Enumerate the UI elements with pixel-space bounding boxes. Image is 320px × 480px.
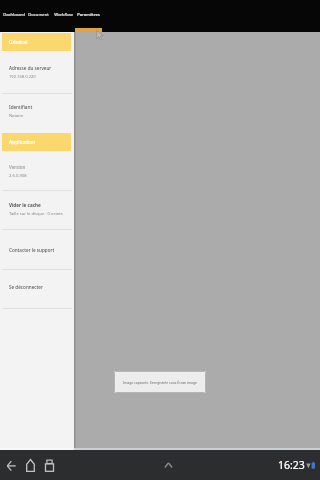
- staticText: 2.6.0-908: [9, 173, 27, 179]
- staticText: Dashboard: [3, 12, 25, 18]
- button[interactable]: Workflow: [52, 0, 75, 32]
- button[interactable]: Identifiant: [0, 94, 74, 133]
- staticText: 16:23: [278, 458, 305, 472]
- staticText: Application: [9, 139, 36, 146]
- staticText: Notaire: [9, 113, 24, 119]
- button[interactable]: Vider le cache: [0, 191, 74, 229]
- staticText: Se déconnecter: [9, 284, 43, 290]
- staticText: Version: [9, 164, 26, 170]
- button[interactable]: Application: [2, 133, 71, 151]
- staticText: Contacter le support: [9, 247, 55, 253]
- staticText: Document: [28, 12, 49, 18]
- button[interactable]: Contacter le support: [0, 230, 74, 269]
- staticText: Identifiant: [9, 104, 33, 110]
- staticText: 192.168.0.220: [9, 74, 36, 80]
- button[interactable]: Général: [2, 33, 71, 51]
- staticText: Paramètres: [77, 12, 100, 18]
- staticText: Général: [9, 39, 28, 46]
- button[interactable]: Dashboard: [0, 0, 27, 32]
- button[interactable]: Recent apps: [40, 456, 59, 475]
- button[interactable]: Paramètres: [75, 0, 102, 32]
- button[interactable]: Back: [2, 456, 21, 475]
- staticText: Image capturée. Enregistrée sous Écran i…: [123, 380, 197, 385]
- staticText: Taille sur le disque : 0 octets: [9, 211, 63, 217]
- button[interactable]: Show notifications: [159, 456, 178, 475]
- button[interactable]: Version: [0, 161, 74, 190]
- staticText: Adresse du serveur: [9, 65, 52, 71]
- button[interactable]: Se déconnecter: [0, 270, 74, 304]
- button[interactable]: Document: [26, 0, 51, 32]
- button[interactable]: Adresse du serveur: [0, 61, 74, 93]
- button[interactable]: Home: [21, 456, 40, 475]
- staticText: Workflow: [54, 12, 73, 18]
- staticText: Vider le cache: [9, 202, 41, 208]
